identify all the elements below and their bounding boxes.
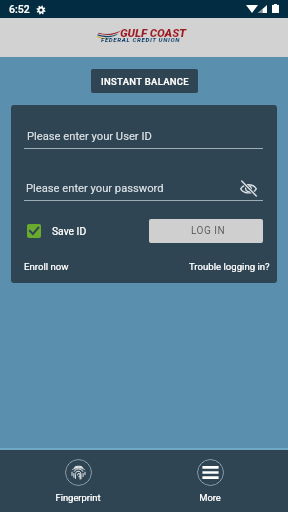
- button[interactable]: Save ID: [24, 220, 87, 242]
- staticText: Save ID: [52, 225, 87, 237]
- staticText: INSTANT BALANCE: [101, 76, 189, 87]
- button[interactable]: LOG IN: [149, 219, 263, 243]
- staticText: 6:52: [9, 3, 30, 15]
- staticText: FEDERAL CREDIT UNION: [101, 36, 180, 43]
- staticText: More: [199, 492, 221, 503]
- button[interactable]: Enroll now: [24, 261, 69, 272]
- staticText: Please enter your User ID: [27, 130, 152, 143]
- button[interactable]: More: [144, 455, 276, 507]
- staticText: GULF COAST: [120, 26, 187, 40]
- button[interactable]: Please enter your password: [26, 182, 164, 195]
- button[interactable]: Fingerprint: [12, 455, 144, 507]
- staticText: LOG IN: [191, 225, 226, 237]
- button[interactable]: INSTANT BALANCE: [91, 69, 198, 93]
- button[interactable]: Trouble logging in?: [189, 261, 270, 272]
- staticText: Fingerprint: [55, 492, 101, 503]
- button[interactable]: Show password: [237, 177, 259, 199]
- button[interactable]: Please enter your User ID: [24, 121, 263, 149]
